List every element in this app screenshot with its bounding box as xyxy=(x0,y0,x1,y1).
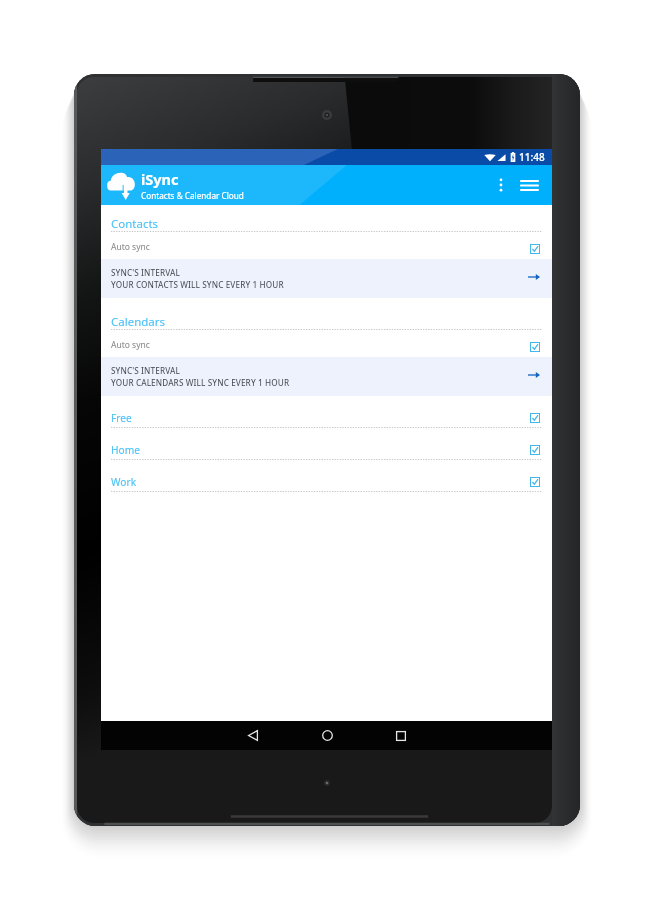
staticText: Calendars xyxy=(111,314,166,330)
button[interactable]: More options xyxy=(488,172,514,198)
staticText: YOUR CONTACTS WILL SYNC EVERY 1 HOUR xyxy=(111,279,284,290)
staticText: Auto sync xyxy=(111,241,150,253)
button[interactable]: Menu xyxy=(516,172,542,198)
staticText: Work xyxy=(111,475,137,489)
staticText: SYNC'S INTERVAL xyxy=(111,365,180,376)
button[interactable]: Recents xyxy=(384,721,418,750)
staticText: 11:48 xyxy=(519,150,545,164)
staticText: Contacts xyxy=(111,216,159,232)
button[interactable]: SYNC'S INTERVAL xyxy=(101,259,552,298)
button[interactable]: Contacts xyxy=(101,216,552,232)
staticText: SYNC'S INTERVAL xyxy=(111,267,180,278)
button[interactable]: SYNC'S INTERVAL xyxy=(101,357,552,396)
staticText: iSync xyxy=(141,169,179,189)
staticText: Free xyxy=(111,411,132,425)
button[interactable]: Auto sync xyxy=(101,237,552,260)
button[interactable]: Free xyxy=(101,410,552,428)
button[interactable]: Home xyxy=(101,442,552,460)
button[interactable]: Home xyxy=(310,721,344,750)
button[interactable]: Calendars xyxy=(101,314,552,330)
button[interactable]: Auto sync xyxy=(101,335,552,358)
button[interactable]: Back xyxy=(236,721,270,750)
staticText: YOUR CALENDARS WILL SYNC EVERY 1 HOUR xyxy=(111,377,290,388)
staticText: Contacts & Calendar Cloud xyxy=(141,190,244,201)
staticText: Home xyxy=(111,443,140,457)
button[interactable]: Work xyxy=(101,474,552,492)
staticText: Auto sync xyxy=(111,339,150,351)
